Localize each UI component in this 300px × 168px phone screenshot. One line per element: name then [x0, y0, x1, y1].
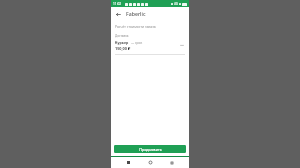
staticText: 11:02: [113, 2, 122, 6]
staticText: Доставка: [115, 34, 129, 38]
button[interactable]: Продолжить: [114, 145, 186, 153]
staticText: Продолжить: [139, 147, 162, 152]
button[interactable]: Back: [114, 10, 122, 18]
staticText: — срок: [131, 41, 143, 45]
button[interactable]: More options: [179, 43, 185, 49]
button[interactable]: Home: [146, 158, 155, 167]
button[interactable]: Recent apps: [167, 158, 176, 167]
staticText: Расчёт стоимости заказа: [115, 24, 156, 29]
staticText: 4G: [174, 2, 178, 6]
button[interactable]: Курьер: [115, 40, 185, 51]
staticText: Курьер: [115, 40, 129, 45]
staticText: 150,00 ₽: [115, 46, 131, 51]
button[interactable]: Back: [124, 158, 133, 167]
staticText: Faberlic: [126, 10, 146, 17]
